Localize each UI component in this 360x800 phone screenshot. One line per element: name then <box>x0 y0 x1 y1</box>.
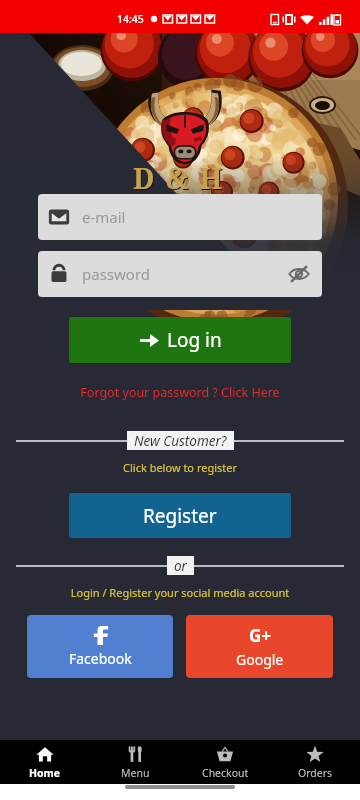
staticText: Menu <box>121 766 150 780</box>
button[interactable]: Orders <box>270 740 360 784</box>
staticText: or <box>174 557 187 574</box>
staticText: Login / Register your social media accou… <box>0 585 360 600</box>
button[interactable]: Facebook <box>27 615 173 678</box>
button[interactable]: Home <box>0 740 90 784</box>
button[interactable]: Log in <box>69 317 291 363</box>
button[interactable]: e-mail <box>38 194 322 240</box>
staticText: New Customer? <box>134 432 227 449</box>
button[interactable]: Show password <box>286 261 312 287</box>
staticText: Checkout <box>202 766 249 780</box>
staticText: D & H <box>133 159 225 197</box>
staticText: G+ <box>249 624 272 647</box>
button[interactable]: password <box>38 251 322 297</box>
staticText: Google <box>236 650 284 669</box>
staticText: 14:45 <box>117 12 144 26</box>
button[interactable]: Checkout <box>180 740 270 784</box>
button[interactable]: Menu <box>90 740 180 784</box>
button[interactable]: G+ <box>186 615 333 678</box>
staticText: Orders <box>298 766 333 780</box>
button[interactable]: Forgot your password ? Click Here <box>0 384 360 401</box>
staticText: Log in <box>167 327 222 353</box>
staticText: Facebook <box>69 649 132 668</box>
staticText: D & H <box>134 160 226 198</box>
staticText: Register <box>143 503 217 529</box>
staticText: password <box>82 264 150 284</box>
button[interactable]: Register <box>69 493 291 538</box>
staticText: Click below to register <box>0 460 360 475</box>
staticText: Home <box>29 766 61 780</box>
staticText: e-mail <box>82 207 126 227</box>
